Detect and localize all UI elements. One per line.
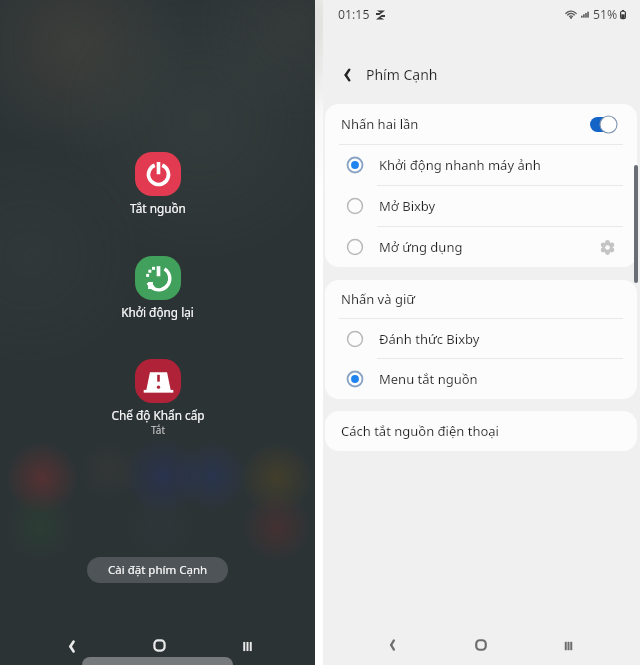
- button[interactable]: Menu tắt nguồn: [325, 359, 637, 399]
- staticText: Chế độ Khẩn cấp: [111, 407, 205, 423]
- staticText: Đánh thức Bixby: [379, 330, 480, 348]
- button[interactable]: Đánh thức Bixby: [325, 319, 637, 358]
- staticText: Khởi động lại: [121, 304, 194, 320]
- staticText: Phím Cạnh: [366, 65, 438, 84]
- button[interactable]: Mở Bixby: [325, 186, 637, 226]
- button[interactable]: Nhấn và giữ: [325, 280, 637, 318]
- button[interactable]: Cài đặt phím Cạnh: [87, 557, 228, 583]
- staticText: 51%: [593, 6, 618, 23]
- staticText: Mở Bixby: [379, 197, 436, 215]
- staticText: Menu tắt nguồn: [379, 370, 478, 388]
- staticText: Khởi động nhanh máy ảnh: [379, 156, 541, 174]
- button[interactable]: Mở ứng dụng: [325, 227, 637, 267]
- button[interactable]: Back: [334, 61, 361, 88]
- button[interactable]: Recents: [549, 627, 587, 665]
- staticText: Tắt: [151, 423, 165, 437]
- button[interactable]: Khởi động nhanh máy ảnh: [325, 145, 637, 185]
- button[interactable]: Home: [140, 626, 178, 664]
- button[interactable]: Tắt nguồn: [0, 152, 315, 216]
- button[interactable]: Nhấn hai lần: [325, 104, 637, 144]
- button[interactable]: Cách tắt nguồn điện thoại: [325, 411, 637, 451]
- button[interactable]: Back: [373, 626, 411, 664]
- button[interactable]: Recents: [228, 627, 266, 665]
- staticText: Tắt nguồn: [130, 200, 186, 216]
- staticText: Cài đặt phím Cạnh: [108, 562, 208, 578]
- staticText: 01:15: [338, 6, 370, 23]
- button[interactable]: Khởi động lại: [0, 256, 315, 320]
- button[interactable]: Chế độ Khẩn cấp: [0, 359, 315, 437]
- staticText: Nhấn hai lần: [341, 115, 419, 133]
- button[interactable]: Settings: [596, 236, 618, 258]
- staticText: Nhấn và giữ: [341, 290, 416, 308]
- staticText: Cách tắt nguồn điện thoại: [341, 422, 499, 440]
- button[interactable]: Home: [462, 626, 500, 664]
- staticText: Mở ứng dụng: [379, 238, 463, 256]
- button[interactable]: Back: [53, 627, 91, 665]
